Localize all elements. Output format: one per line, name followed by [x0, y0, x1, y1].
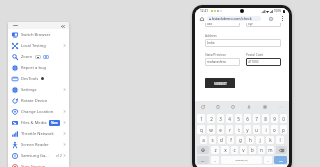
button[interactable]: c: [231, 146, 238, 154]
button[interactable]: i: [262, 125, 269, 134]
button[interactable]: m: [267, 146, 274, 154]
staticText: 0: [282, 116, 285, 122]
button[interactable]: Settings: [8, 84, 69, 95]
staticText: 4: [228, 116, 231, 122]
button[interactable]: Collapse panel: [60, 23, 66, 29]
button[interactable]: 5: [235, 114, 242, 123]
button[interactable]: India: [205, 39, 281, 47]
button[interactable]: p: [280, 125, 287, 134]
staticText: SUBMIT: [214, 81, 227, 86]
staticText: Report a bug: [21, 65, 47, 71]
button[interactable]: k: [266, 136, 274, 144]
staticText: 7: [255, 116, 258, 122]
button[interactable]: Change Location: [8, 106, 69, 117]
button[interactable]: maharashtra: [205, 58, 240, 66]
button[interactable]: Zoom out: [35, 55, 41, 59]
button[interactable]: 7: [253, 114, 260, 123]
button[interactable]: Go: [274, 156, 287, 164]
staticText: ,: [214, 157, 216, 163]
staticText: ?#1: [201, 159, 205, 162]
button[interactable]: g: [236, 136, 244, 144]
button[interactable]: More options: [281, 16, 284, 21]
staticText: h: [249, 137, 252, 143]
button[interactable]: 6: [244, 114, 251, 123]
button[interactable]: xyz: [246, 23, 281, 27]
button[interactable]: Zoom in: [43, 55, 49, 59]
staticText: p: [282, 127, 285, 133]
button[interactable]: l: [276, 136, 284, 144]
staticText: n: [260, 147, 263, 153]
staticText: .: [267, 157, 269, 163]
button[interactable]: Clipboard: [210, 101, 225, 113]
button[interactable]: Switch Browser: [8, 29, 69, 40]
button[interactable]: Screen Reader: [8, 139, 69, 150]
button[interactable]: DevTools: [8, 73, 69, 84]
button[interactable]: Files & Media: [8, 117, 69, 128]
button[interactable]: Voice input: [241, 101, 257, 113]
button[interactable]: r: [226, 125, 233, 134]
staticText: Settings: [21, 87, 37, 93]
button[interactable]: j: [256, 136, 264, 144]
button[interactable]: 1: [197, 114, 205, 123]
button[interactable]: e: [217, 125, 224, 134]
button[interactable]: 2: [207, 114, 215, 123]
staticText: 8: [264, 116, 267, 122]
staticText: 2: [210, 116, 213, 122]
staticText: m: [268, 147, 273, 153]
button[interactable]: Backspace: [276, 146, 287, 154]
button[interactable]: q: [197, 125, 205, 134]
button[interactable]: y: [244, 125, 251, 134]
staticText: r: [229, 127, 231, 133]
button[interactable]: v: [240, 146, 247, 154]
button[interactable]: ,: [211, 156, 219, 164]
button[interactable]: 9: [271, 114, 278, 123]
staticText: Samsung Ga...: [21, 153, 49, 159]
staticText: 6: [246, 116, 249, 122]
button[interactable]: 0: [280, 114, 287, 123]
staticText: Files & Media: [21, 120, 47, 126]
staticText: t: [238, 127, 240, 133]
button[interactable]: a: [200, 136, 207, 144]
staticText: d: [220, 137, 223, 143]
button[interactable]: z: [211, 146, 219, 154]
button[interactable]: SUBMIT: [205, 78, 235, 88]
staticText: k: [269, 137, 272, 143]
button[interactable]: d: [218, 136, 225, 144]
button[interactable]: w: [207, 125, 215, 134]
button[interactable]: Throttle Network: [8, 128, 69, 139]
button[interactable]: Stop Session: [8, 161, 69, 167]
button[interactable]: ?#1: [197, 156, 209, 164]
staticText: Go: [279, 159, 283, 162]
button[interactable]: Page info: [269, 17, 273, 21]
button[interactable]: f: [227, 136, 234, 144]
button[interactable]: Report a bug: [8, 62, 69, 73]
button[interactable]: Local Testing: [8, 40, 69, 51]
button[interactable]: 3: [217, 114, 224, 123]
button[interactable]: Emoji: [195, 101, 210, 113]
button[interactable]: Samsung Ga...: [8, 150, 69, 161]
button[interactable]: o: [271, 125, 278, 134]
button[interactable]: Home: [199, 16, 204, 21]
button[interactable]: Stickers: [225, 101, 241, 113]
button[interactable]: bstackdemo.com/check: [207, 16, 261, 21]
button[interactable]: English(US): [221, 156, 262, 164]
button[interactable]: h: [246, 136, 254, 144]
button[interactable]: 4: [226, 114, 233, 123]
staticText: c: [233, 147, 236, 153]
button[interactable]: abc: [205, 23, 240, 27]
button[interactable]: b: [249, 146, 256, 154]
staticText: w: [209, 127, 213, 133]
button[interactable]: t: [235, 125, 242, 134]
button[interactable]: u: [253, 125, 260, 134]
button[interactable]: .: [264, 156, 272, 164]
button[interactable]: 411003: [246, 58, 281, 66]
button[interactable]: Zoom: [8, 51, 69, 62]
button[interactable]: s: [209, 136, 216, 144]
button[interactable]: Keyboard settings: [257, 101, 273, 113]
button[interactable]: Rotate Device: [8, 95, 69, 106]
button[interactable]: 8: [262, 114, 269, 123]
button[interactable]: Shift: [197, 146, 209, 154]
button[interactable]: n: [258, 146, 265, 154]
button[interactable]: x: [221, 146, 229, 154]
